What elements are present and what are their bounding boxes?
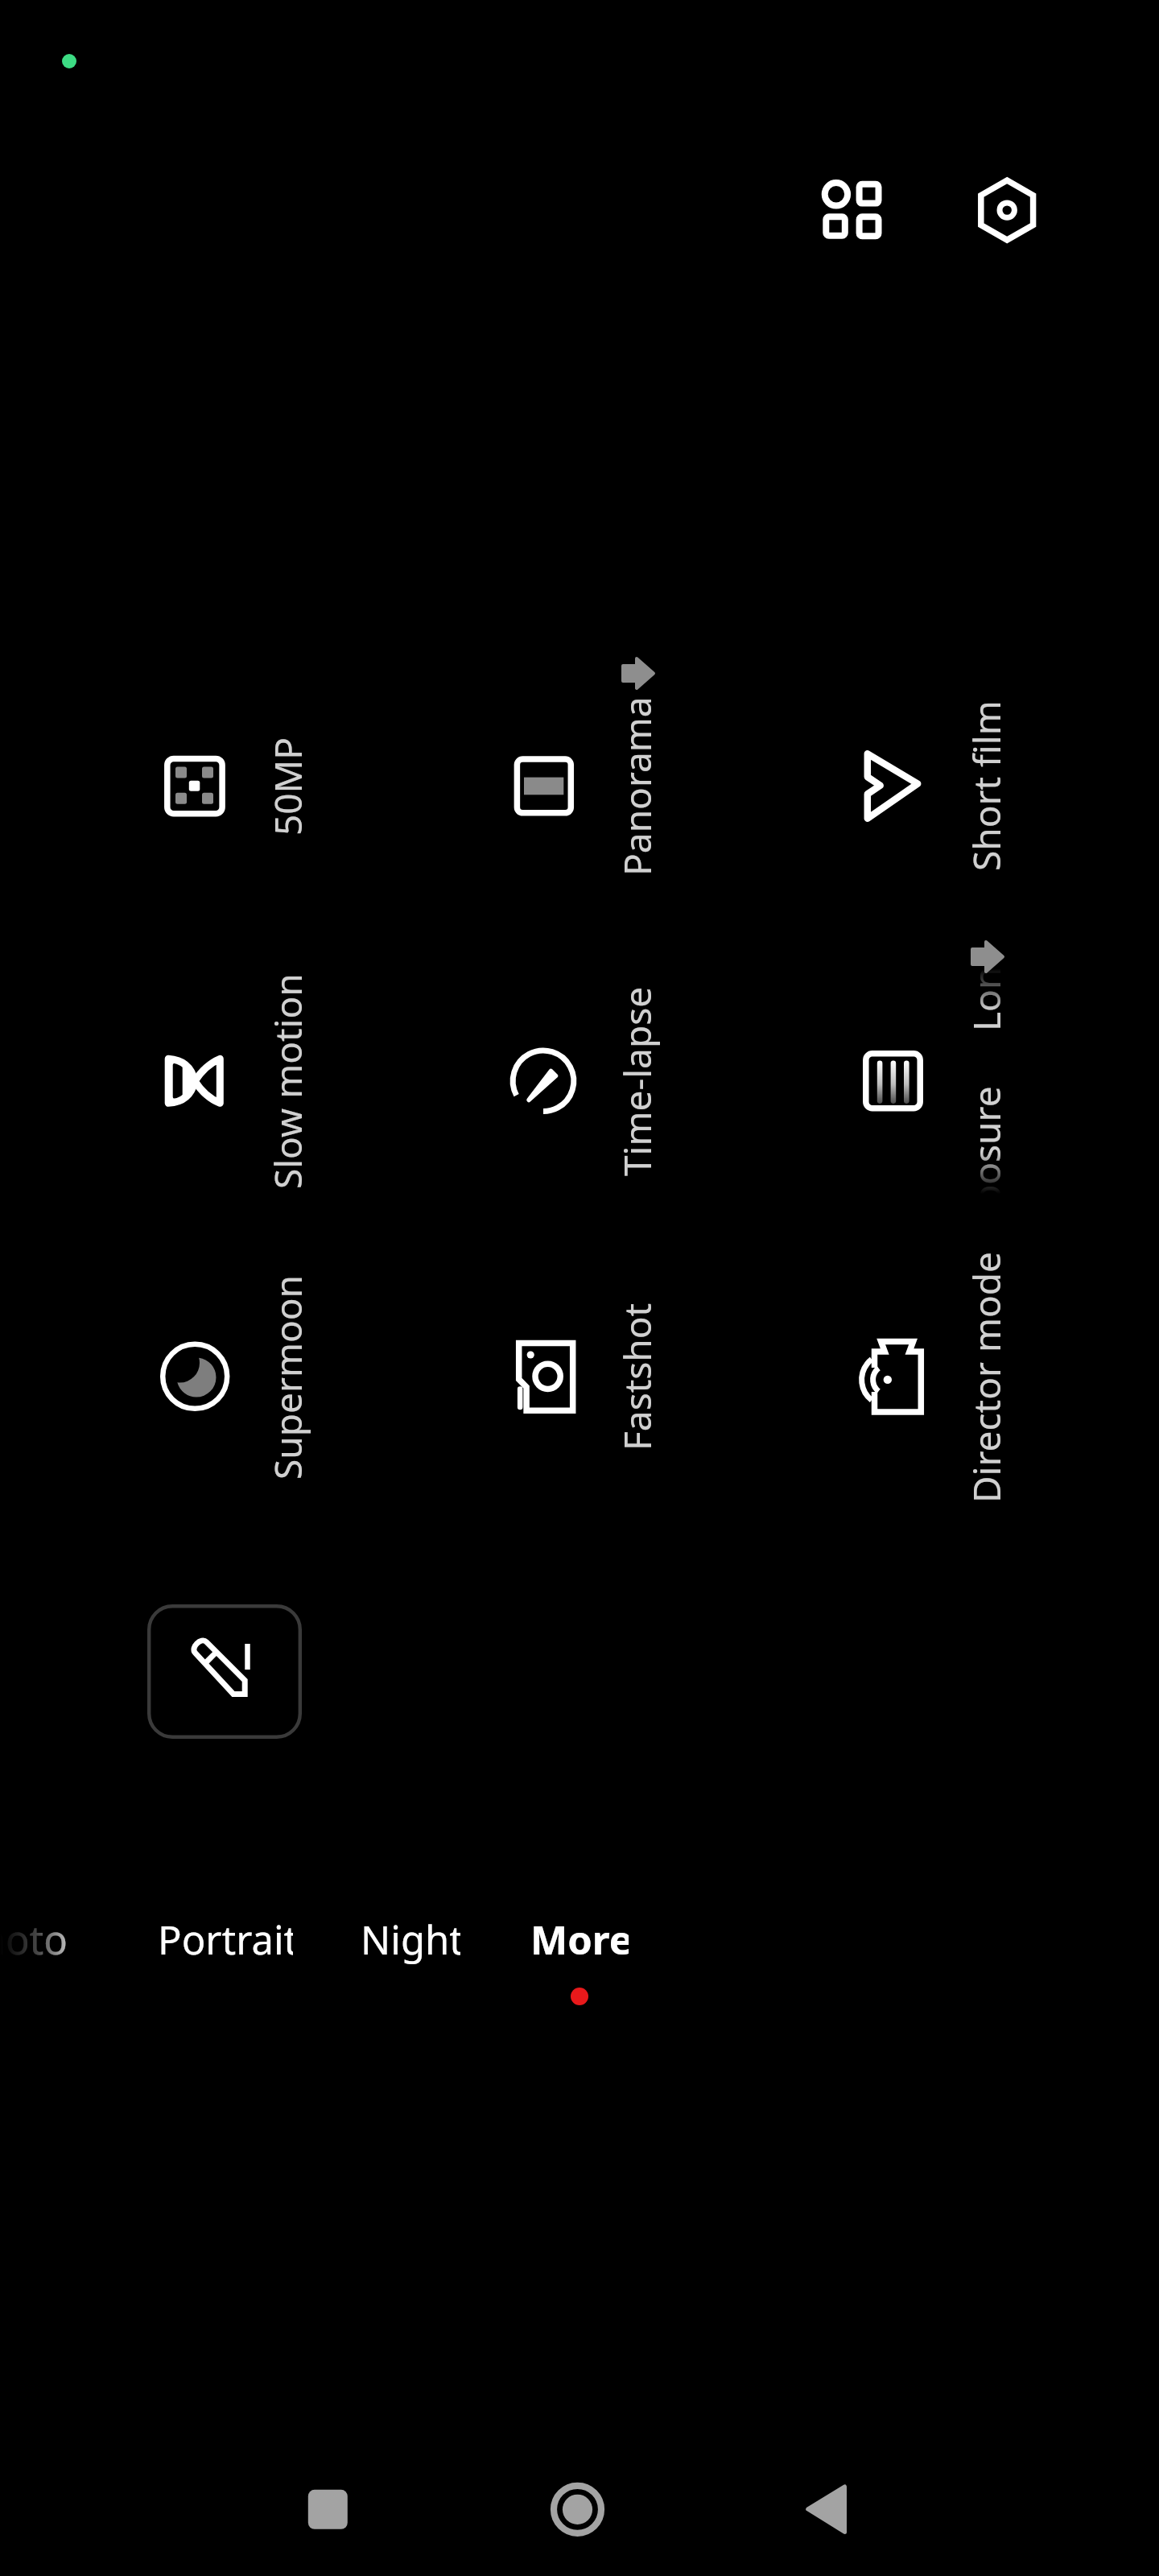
button[interactable]: More xyxy=(530,1901,629,1978)
button[interactable]: Night xyxy=(361,1901,460,1978)
button[interactable]: Fastshot xyxy=(505,1244,691,1509)
button[interactable]: Recent apps xyxy=(263,2461,392,2557)
staticText: Director mode xyxy=(961,1251,1012,1503)
staticText: Slow motion xyxy=(262,973,313,1189)
staticText: Panorama xyxy=(612,696,662,876)
staticText: Long exposure xyxy=(961,968,1012,1031)
button[interactable]: Panorama xyxy=(505,653,691,919)
button[interactable]: Portrait xyxy=(158,1901,293,1978)
staticText: Short film xyxy=(961,700,1012,871)
staticText: 50MP xyxy=(262,737,313,836)
button[interactable]: Supermoon xyxy=(156,1244,341,1509)
button[interactable]: Settings xyxy=(975,175,1042,243)
staticText: More xyxy=(530,1913,629,1967)
staticText: Night xyxy=(361,1913,460,1967)
button[interactable]: Slow motion xyxy=(156,948,341,1214)
staticText: Fastshot xyxy=(612,1302,662,1451)
staticText: Photo xyxy=(0,1913,68,1967)
button[interactable]: 50MP xyxy=(156,653,341,919)
button[interactable]: Back xyxy=(762,2461,891,2557)
button[interactable]: Edit modes xyxy=(147,1604,302,1739)
staticText: Long exposure xyxy=(961,1086,1012,1194)
button[interactable]: Long exposure xyxy=(855,948,1040,1214)
button[interactable]: Short film xyxy=(855,653,1040,919)
button[interactable]: Time-lapse xyxy=(505,948,691,1214)
staticText: Portrait xyxy=(158,1913,293,1967)
staticText: Supermoon xyxy=(262,1274,313,1480)
staticText: Time-lapse xyxy=(612,986,662,1176)
button[interactable]: Camera modes xyxy=(821,179,884,242)
button[interactable]: Photo xyxy=(0,1901,94,1978)
button[interactable]: Director mode xyxy=(855,1244,1040,1509)
button[interactable]: Home xyxy=(513,2461,641,2557)
